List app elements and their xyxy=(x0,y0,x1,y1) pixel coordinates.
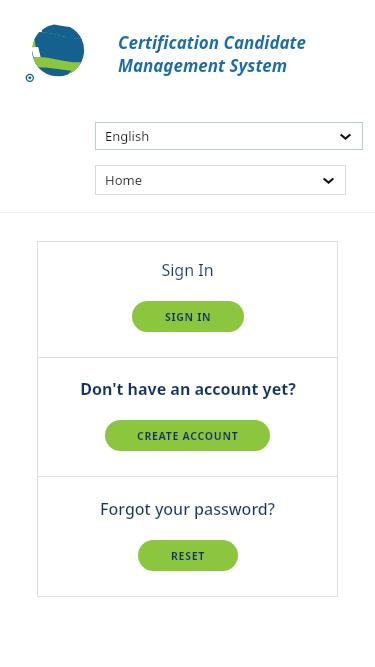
staticText: Management System xyxy=(118,54,288,77)
button[interactable]: RESET xyxy=(138,540,238,571)
staticText: Sign In xyxy=(161,259,214,281)
staticText: Don't have an account yet? xyxy=(80,378,296,400)
other: Certification Candidate Management Syste… xyxy=(22,23,90,85)
staticText: English xyxy=(105,127,150,145)
button[interactable]: CREATE ACCOUNT xyxy=(105,420,270,451)
staticText: SIGN IN xyxy=(165,310,212,324)
staticText: Home xyxy=(105,171,142,189)
staticText: CREATE ACCOUNT xyxy=(137,429,239,443)
button[interactable]: English xyxy=(95,122,363,150)
staticText: RESET xyxy=(171,549,205,563)
button[interactable]: Home xyxy=(95,165,346,195)
staticText: Forgot your password? xyxy=(100,498,275,520)
button[interactable]: SIGN IN xyxy=(132,301,244,332)
staticText: Certification Candidate xyxy=(118,31,307,54)
